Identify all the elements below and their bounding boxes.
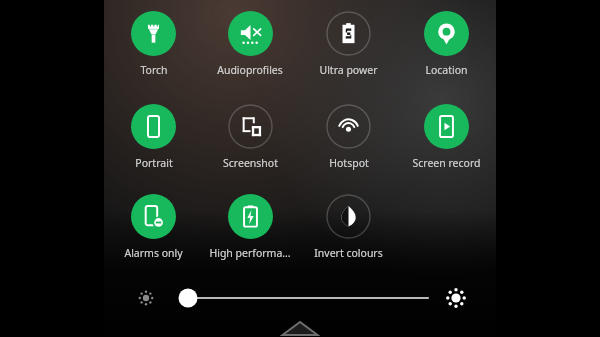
button[interactable]: Hotspot xyxy=(302,104,394,170)
button[interactable]: Location xyxy=(400,11,492,77)
button[interactable]: Torch xyxy=(107,11,199,77)
staticText: Ultra power xyxy=(319,63,378,77)
button[interactable]: Portrait xyxy=(107,104,199,170)
button[interactable]: Low brightness xyxy=(136,288,156,308)
button[interactable]: Screen record xyxy=(400,104,492,170)
staticText: Torch xyxy=(140,63,168,77)
staticText: High performa… xyxy=(209,246,291,260)
button[interactable]: Collapse panel xyxy=(277,317,323,335)
staticText: Location xyxy=(425,63,468,77)
button[interactable]: Ultra power xyxy=(302,11,394,77)
staticText: Alarms only xyxy=(124,246,183,260)
staticText: Screenshot xyxy=(223,156,278,170)
button[interactable]: Alarms only xyxy=(107,194,199,260)
button[interactable]: Audioprofiles xyxy=(204,11,296,77)
button[interactable]: Invert colours xyxy=(302,194,394,260)
staticText: Screen record xyxy=(412,156,481,170)
button[interactable]: Brightness slider xyxy=(178,282,430,314)
staticText: Audioprofiles xyxy=(217,63,283,77)
button[interactable]: High performa… xyxy=(204,194,296,260)
staticText: Portrait xyxy=(135,156,173,170)
staticText: Hotspot xyxy=(329,156,369,170)
staticText: Invert colours xyxy=(314,246,383,260)
button[interactable]: High brightness xyxy=(444,286,468,310)
button[interactable]: Screenshot xyxy=(204,104,296,170)
